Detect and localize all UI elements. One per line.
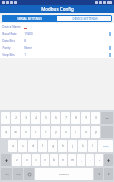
staticText: None xyxy=(24,46,32,50)
button[interactable]: Baud Rate xyxy=(0,30,114,37)
button[interactable]: Parity xyxy=(0,44,114,51)
button[interactable]: b xyxy=(50,154,58,166)
staticText: f xyxy=(42,144,43,148)
button[interactable]: z xyxy=(12,154,21,166)
staticText: r xyxy=(35,130,37,134)
button[interactable]: Ctrl xyxy=(1,168,12,180)
button[interactable]: n xyxy=(59,154,67,166)
button[interactable]: ? xyxy=(95,154,103,166)
button[interactable]: SERIAL SETTINGS xyxy=(2,15,56,22)
button[interactable]: e xyxy=(21,126,30,138)
button[interactable]: a xyxy=(8,140,17,152)
staticText: w xyxy=(14,130,17,134)
button[interactable]: Stop Bits xyxy=(0,51,114,58)
button[interactable]: Shift xyxy=(104,154,113,166)
staticText: 1 xyxy=(5,116,7,120)
staticText: Stop Bits xyxy=(2,53,15,57)
button[interactable]: Data Bits xyxy=(0,37,114,44)
staticText: 3 xyxy=(25,116,27,120)
button[interactable]: j xyxy=(68,140,77,152)
button[interactable]: v xyxy=(41,154,49,166)
button[interactable]: u xyxy=(61,126,70,138)
staticText: k xyxy=(82,144,84,148)
button[interactable]: Globe xyxy=(24,168,34,180)
button[interactable]: 1 xyxy=(1,112,10,124)
button[interactable]: m xyxy=(68,154,76,166)
button[interactable]: 3 xyxy=(21,112,30,124)
button[interactable]: Left xyxy=(94,168,103,180)
button[interactable]: Right xyxy=(104,168,113,180)
button[interactable]: 0 xyxy=(91,112,100,124)
staticText: j xyxy=(72,144,73,148)
staticText: 8 xyxy=(75,116,77,120)
button[interactable]: w xyxy=(11,126,20,138)
button[interactable]: y xyxy=(51,126,60,138)
button[interactable]: 6 xyxy=(51,112,60,124)
staticText: 19200 xyxy=(24,32,33,36)
staticText: DEVICE SETTINGS xyxy=(72,17,98,21)
button[interactable]: s xyxy=(18,140,27,152)
staticText: m xyxy=(71,158,74,162)
staticText: . xyxy=(90,158,91,162)
button[interactable]: i xyxy=(71,126,80,138)
button[interactable]: p xyxy=(91,126,100,138)
button[interactable]: 9 xyxy=(81,112,90,124)
button[interactable]: 4 xyxy=(31,112,40,124)
staticText: e xyxy=(25,130,27,134)
button[interactable]: del xyxy=(101,112,113,124)
staticText: Sym xyxy=(16,173,21,176)
staticText: y xyxy=(55,130,57,134)
staticText: u xyxy=(65,130,67,134)
staticText: Data Bits xyxy=(2,39,15,43)
staticText: g xyxy=(52,144,54,148)
staticText: keyboard xyxy=(59,173,69,176)
staticText: Parity xyxy=(2,46,11,50)
button[interactable]: keyboard xyxy=(35,168,93,180)
staticText: o xyxy=(85,130,87,134)
button[interactable]: Sym xyxy=(13,168,23,180)
button[interactable]: h xyxy=(58,140,67,152)
button[interactable]: 8 xyxy=(71,112,80,124)
staticText: 1 xyxy=(24,53,26,57)
button[interactable]: Open selector xyxy=(108,30,112,37)
staticText: p xyxy=(95,130,97,134)
button[interactable]: k xyxy=(78,140,87,152)
button[interactable]: , xyxy=(77,154,85,166)
button[interactable]: Open selector xyxy=(108,51,112,58)
staticText: x xyxy=(26,158,28,162)
button[interactable]: 2 xyxy=(11,112,20,124)
button[interactable]: Device Name xyxy=(0,23,114,30)
button[interactable]: r xyxy=(31,126,40,138)
staticText: z xyxy=(16,158,18,162)
button[interactable]: x xyxy=(22,154,31,166)
button[interactable]: o xyxy=(81,126,90,138)
staticText: h xyxy=(62,144,64,148)
button[interactable]: l xyxy=(88,140,97,152)
button[interactable]: q xyxy=(1,126,10,138)
staticText: 2 xyxy=(15,116,17,120)
button[interactable]: Open selector xyxy=(108,44,112,51)
staticText: 5 xyxy=(45,116,47,120)
staticText: 7 xyxy=(65,116,67,120)
button[interactable]: d xyxy=(28,140,37,152)
staticText: l xyxy=(92,144,93,148)
staticText: b xyxy=(53,158,55,162)
staticText: ? xyxy=(99,159,100,162)
staticText: s xyxy=(22,144,24,148)
button[interactable]: 7 xyxy=(61,112,70,124)
staticText: a xyxy=(12,144,14,148)
staticText: 9 xyxy=(85,116,87,120)
button[interactable]: t xyxy=(41,126,50,138)
staticText: Device Name xyxy=(2,25,21,29)
button[interactable]: DEVICE SETTINGS xyxy=(57,15,112,22)
button[interactable]: f xyxy=(38,140,47,152)
button[interactable]: Enter xyxy=(98,140,113,152)
button[interactable]: 5 xyxy=(41,112,50,124)
button[interactable]: Shift xyxy=(1,154,11,166)
staticText: , xyxy=(81,158,82,162)
button[interactable]: c xyxy=(32,154,40,166)
button[interactable]: g xyxy=(48,140,57,152)
staticText: q xyxy=(5,130,7,134)
